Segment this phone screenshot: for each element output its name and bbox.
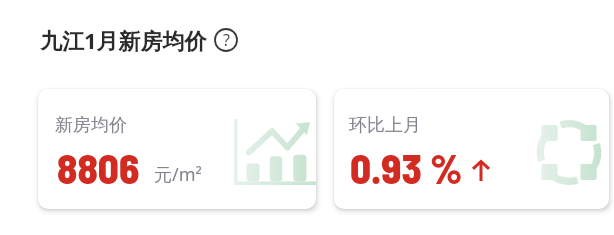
button[interactable]: 新房均价: [38, 89, 316, 209]
button[interactable]: 环比上月: [334, 89, 609, 209]
staticText: ?: [223, 29, 230, 51]
button[interactable]: Help: [214, 28, 238, 52]
staticText: 8806: [57, 143, 140, 192]
button[interactable]: 九江1月新房均价: [40, 25, 238, 55]
staticText: 新房均价: [55, 114, 127, 137]
staticText: 九江1月新房均价: [40, 25, 207, 55]
staticText: 元/m²: [154, 162, 202, 187]
staticText: 环比上月: [349, 114, 421, 137]
staticText: 0.93 %: [350, 143, 463, 192]
